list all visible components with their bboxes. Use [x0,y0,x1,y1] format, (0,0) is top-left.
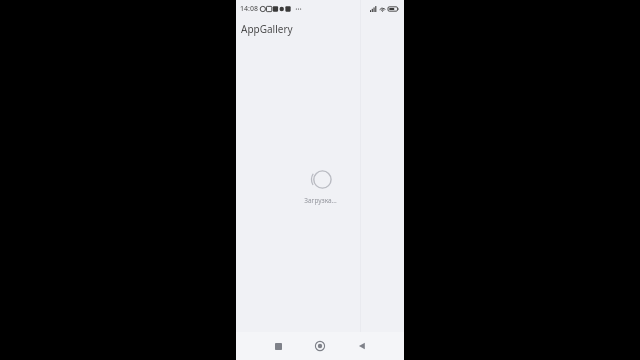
button[interactable]: Recent apps [261,332,295,360]
staticText: 14:08 [240,4,258,14]
button[interactable]: Back [345,332,379,360]
staticText: Загрузка... [304,196,337,205]
button[interactable]: Home [303,332,337,360]
staticText: AppGallery [241,22,293,36]
